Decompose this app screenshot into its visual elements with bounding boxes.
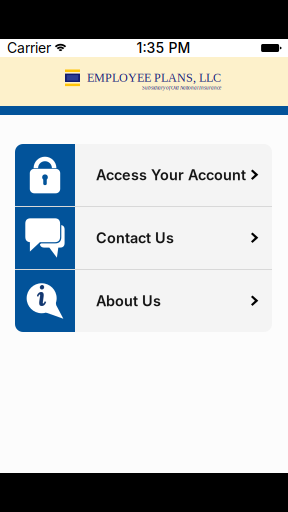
button[interactable]: Contact Us: [15, 207, 272, 269]
staticText: About Us: [96, 292, 161, 310]
staticText: Subsidiary of Old National Insurance: [142, 85, 221, 91]
staticText: Carrier: [7, 39, 51, 56]
staticText: i: [37, 278, 47, 314]
staticText: EMPLOYEE PLANS, LLC: [87, 71, 221, 84]
button[interactable]: Access Your Account: [15, 144, 272, 206]
staticText: 1:35 PM: [136, 39, 190, 56]
staticText: Contact Us: [96, 229, 174, 247]
button[interactable]: i: [15, 270, 272, 332]
staticText: Access Your Account: [96, 166, 246, 184]
